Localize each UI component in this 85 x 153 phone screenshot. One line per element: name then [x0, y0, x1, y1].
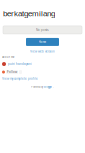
staticText: No posts. — [36, 28, 49, 32]
staticText: putri handayani — [8, 62, 32, 66]
staticText: berkatgemilang — [3, 9, 55, 18]
button[interactable]: putri handayani — [2, 62, 32, 66]
staticText: View web version — [30, 50, 55, 53]
button[interactable]: Home — [26, 38, 59, 46]
staticText: Blogger — [44, 85, 52, 88]
staticText: . — [53, 85, 54, 88]
button[interactable]: View web version — [0, 50, 85, 53]
button[interactable]: Follow — [2, 70, 18, 74]
staticText: about me — [2, 55, 14, 58]
button[interactable]: View my complete profile — [0, 77, 38, 80]
staticText: View my complete profile — [2, 77, 38, 80]
staticText: Powered by — [31, 85, 43, 88]
staticText: Home — [38, 40, 46, 44]
staticText: Follow — [7, 70, 17, 74]
button[interactable]: Blogger — [44, 85, 52, 88]
